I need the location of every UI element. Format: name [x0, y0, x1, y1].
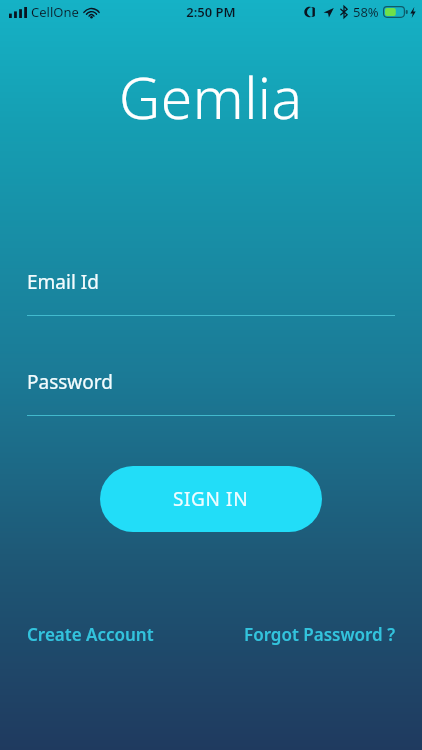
- button[interactable]: Password: [27, 366, 395, 398]
- button[interactable]: Forgot Password ?: [244, 619, 395, 650]
- staticText: CellOne: [31, 3, 79, 21]
- staticText: Password: [27, 369, 113, 395]
- staticText: Email Id: [27, 269, 99, 295]
- staticText: 58%: [353, 3, 379, 21]
- staticText: SIGN IN: [173, 486, 249, 512]
- staticText: Forgot Password ?: [244, 623, 395, 646]
- staticText: 2:50 PM: [186, 3, 236, 21]
- button[interactable]: Create Account: [27, 619, 154, 650]
- button[interactable]: Email Id: [27, 266, 395, 298]
- staticText: Create Account: [27, 623, 154, 646]
- staticText: Gemlia: [119, 58, 303, 130]
- button[interactable]: SIGN IN: [100, 466, 322, 532]
